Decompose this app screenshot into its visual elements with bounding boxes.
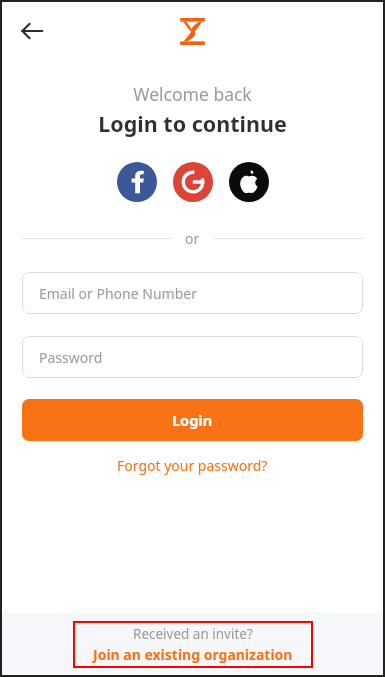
button[interactable]: Password — [22, 336, 363, 378]
button[interactable]: Login — [22, 399, 363, 441]
staticText: Password — [39, 348, 103, 367]
button[interactable]: Continue with Google — [173, 162, 213, 202]
staticText: Received an invite? — [133, 625, 253, 643]
staticText: Login to continue — [98, 109, 287, 138]
staticText: Join an existing organization — [93, 645, 293, 664]
staticText: Email or Phone Number — [39, 284, 197, 303]
button[interactable]: Continue with Facebook — [117, 162, 157, 202]
button[interactable]: Back — [10, 9, 54, 53]
button[interactable]: Email or Phone Number — [22, 272, 363, 314]
staticText: Login — [172, 410, 213, 430]
staticText: Welcome back — [133, 82, 252, 106]
button[interactable]: Forgot your password? — [109, 453, 276, 478]
button[interactable]: Received an invite? — [73, 621, 313, 668]
staticText: or — [185, 229, 200, 248]
button[interactable]: Continue with Apple — [229, 162, 269, 202]
staticText: Forgot your password? — [117, 456, 268, 475]
